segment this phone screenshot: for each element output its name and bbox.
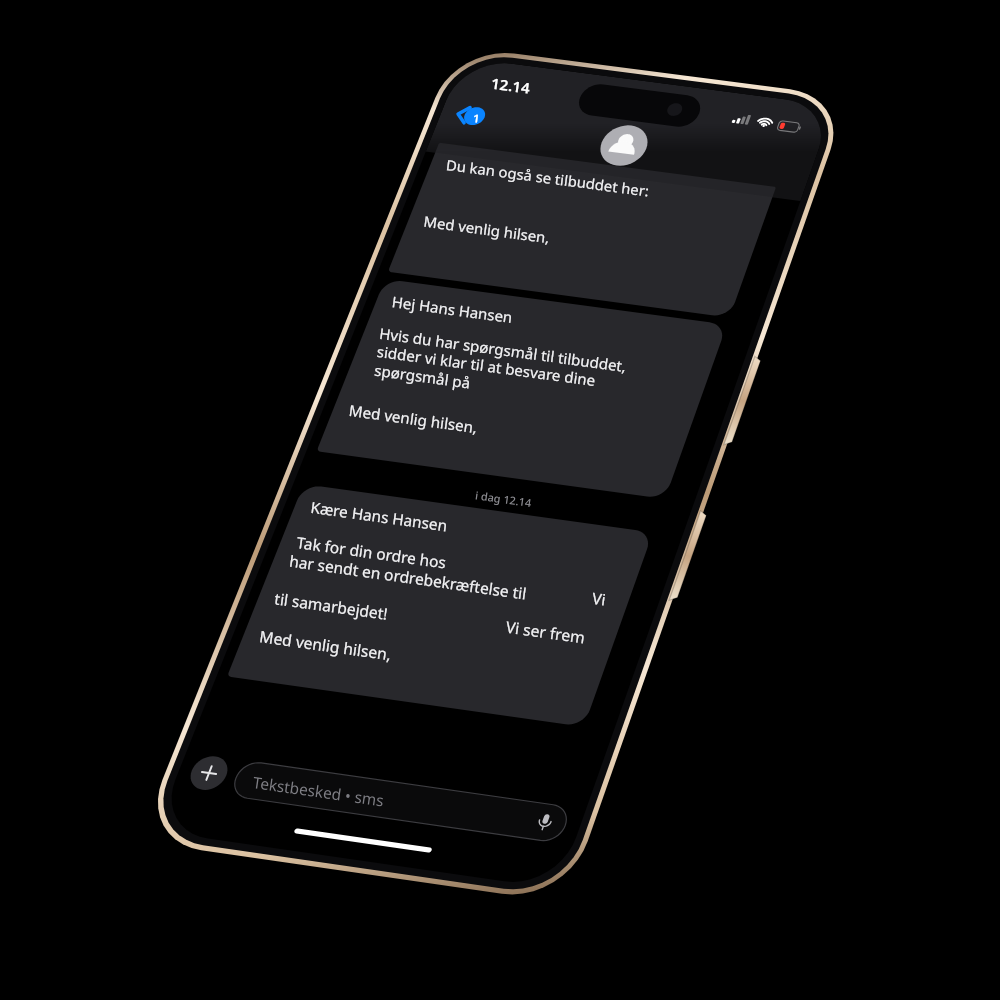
button[interactable] [229, 760, 571, 842]
button[interactable] [316, 278, 726, 498]
button[interactable]: Kontaktprofil [593, 122, 653, 168]
button[interactable]: Diktér [525, 810, 562, 837]
button[interactable] [227, 484, 652, 726]
button[interactable]: Tilføj vedhæftning [185, 753, 232, 791]
button[interactable] [387, 142, 775, 316]
button[interactable]: Tilbage, 1 ulæst besked [447, 102, 503, 131]
